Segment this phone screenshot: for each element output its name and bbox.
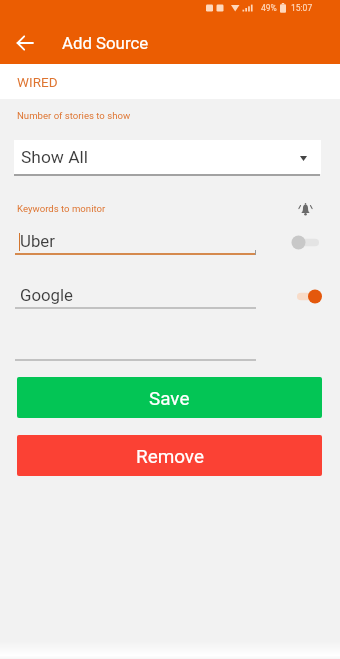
staticText: Uber [20,231,55,251]
staticText: Remove [136,445,204,467]
staticText: Google [20,285,74,305]
button[interactable] [15,336,256,362]
staticText: Add Source [62,33,149,53]
button[interactable]: Toggle off [290,234,324,251]
staticText: 49% [261,3,277,13]
button[interactable]: Show All [14,140,321,177]
staticText: Keywords to monitor [17,203,106,214]
staticText: Save [149,387,190,409]
button[interactable]: Remove [17,435,322,476]
button[interactable]: Notifications [297,201,313,217]
button[interactable]: Google [15,284,256,310]
staticText: Show All [21,147,89,167]
staticText: WIRED [17,74,58,90]
button[interactable]: Uber [15,230,256,256]
staticText: Number of stories to show [17,110,131,121]
button[interactable]: Back [6,24,43,61]
staticText: 15:07 [291,3,313,13]
button[interactable]: Save [17,377,322,418]
button[interactable]: Toggle on [290,288,324,305]
